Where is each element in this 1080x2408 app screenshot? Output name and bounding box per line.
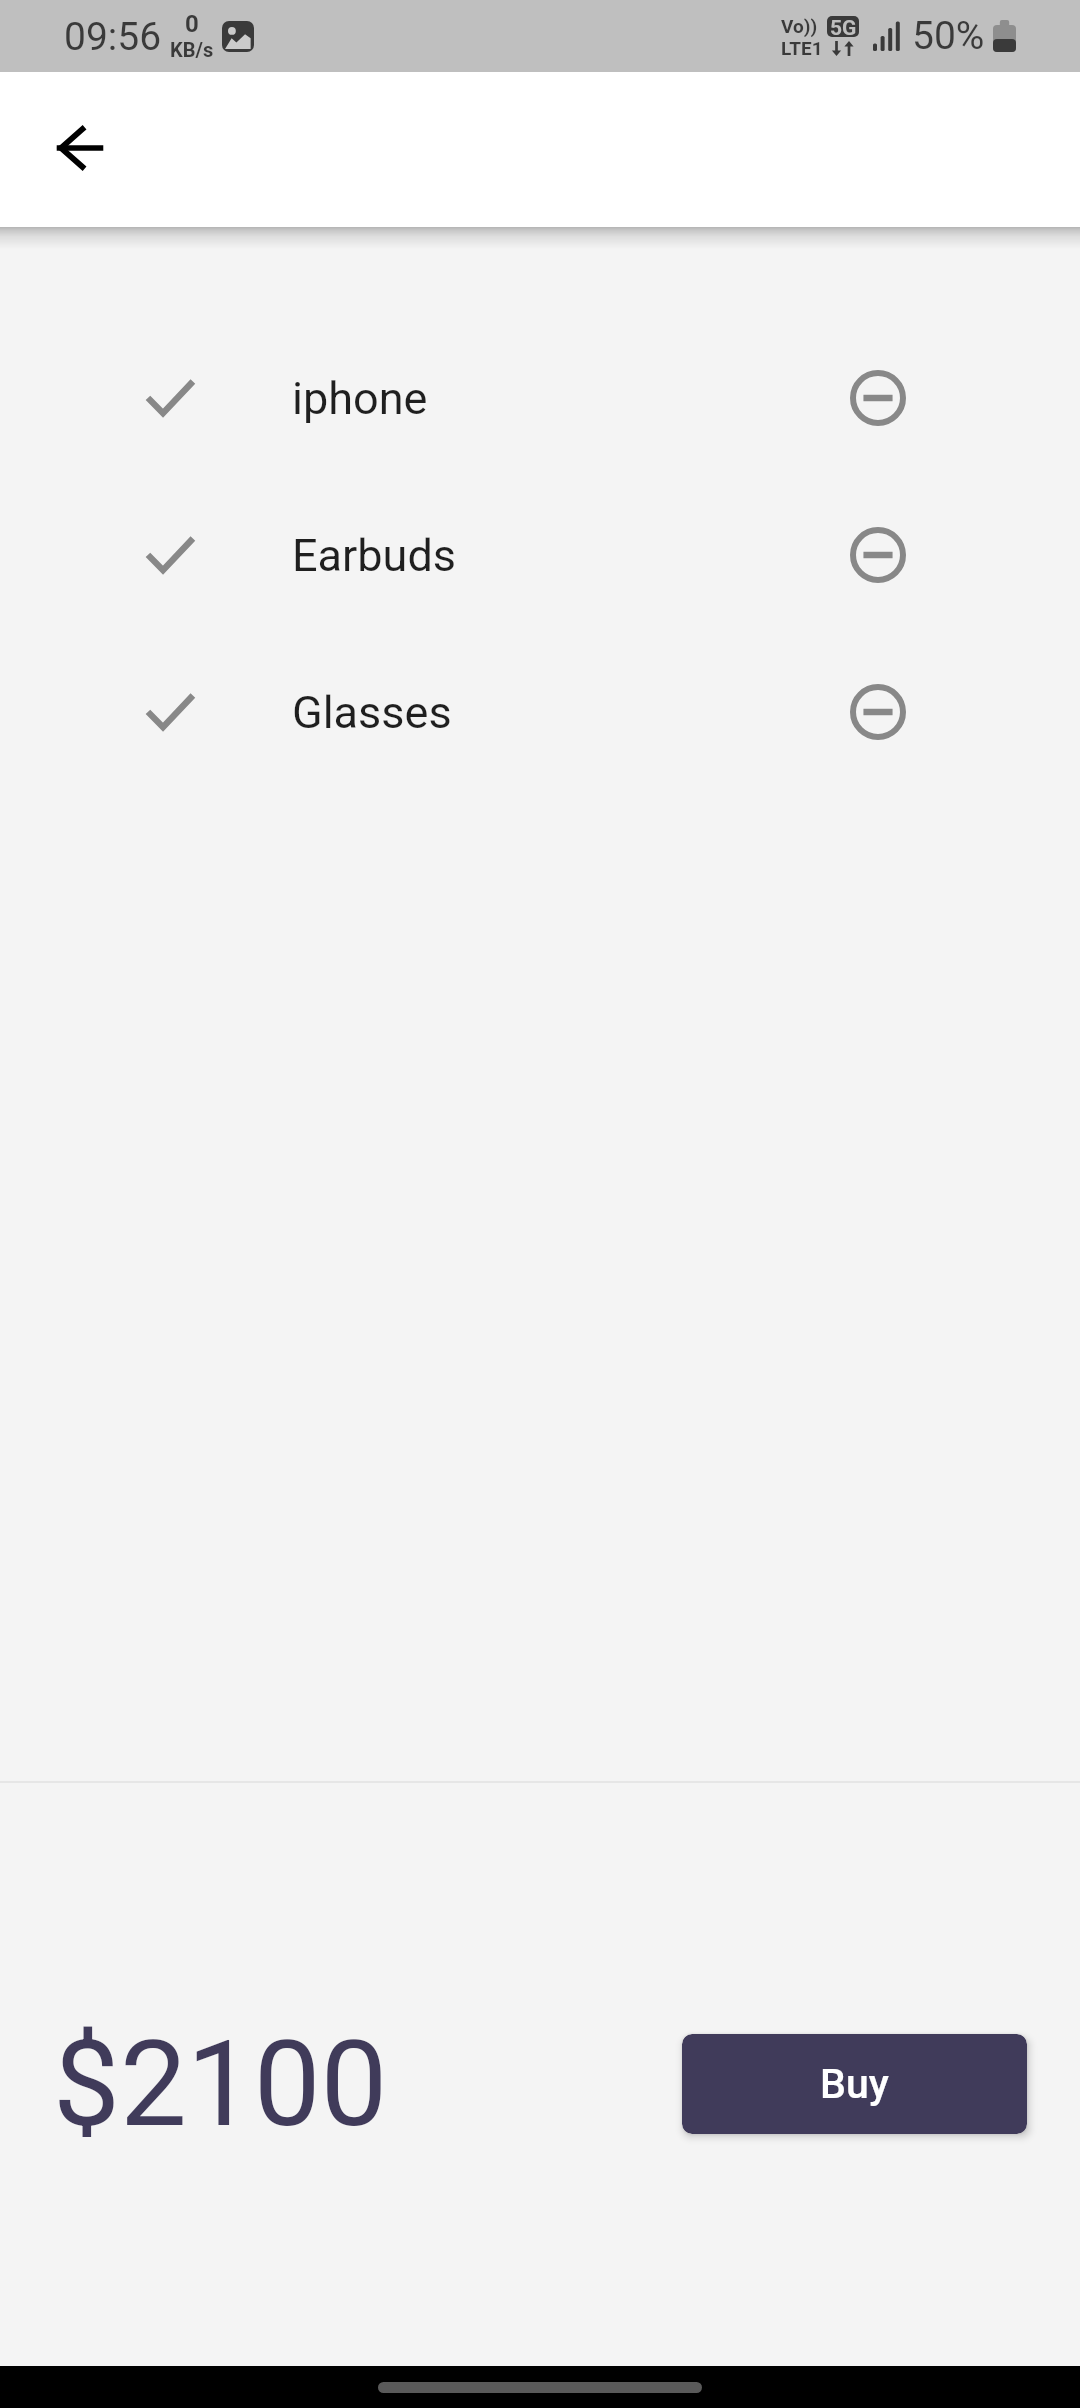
- staticText: 5G: [830, 16, 857, 37]
- staticText: $2100: [53, 2015, 388, 2154]
- button[interactable]: Back: [29, 98, 129, 198]
- staticText: Earbuds: [292, 529, 456, 582]
- staticText: 09:56: [64, 14, 162, 60]
- button[interactable]: Remove Glasses: [838, 672, 918, 752]
- button[interactable]: Buy: [682, 2034, 1027, 2134]
- staticText: 0: [185, 10, 199, 38]
- button[interactable]: Earbuds: [0, 515, 1080, 595]
- staticText: Vo)): [781, 15, 818, 37]
- staticText: Glasses: [292, 686, 452, 739]
- button[interactable]: Remove iphone: [838, 358, 918, 438]
- staticText: LTE1: [781, 37, 823, 59]
- staticText: KB/s: [170, 38, 214, 61]
- staticText: iphone: [292, 372, 428, 425]
- button[interactable]: Remove Earbuds: [838, 515, 918, 595]
- button[interactable]: iphone: [0, 358, 1080, 438]
- button[interactable]: Glasses: [0, 672, 1080, 752]
- staticText: 50%: [912, 13, 985, 59]
- staticText: Buy: [820, 2060, 889, 2108]
